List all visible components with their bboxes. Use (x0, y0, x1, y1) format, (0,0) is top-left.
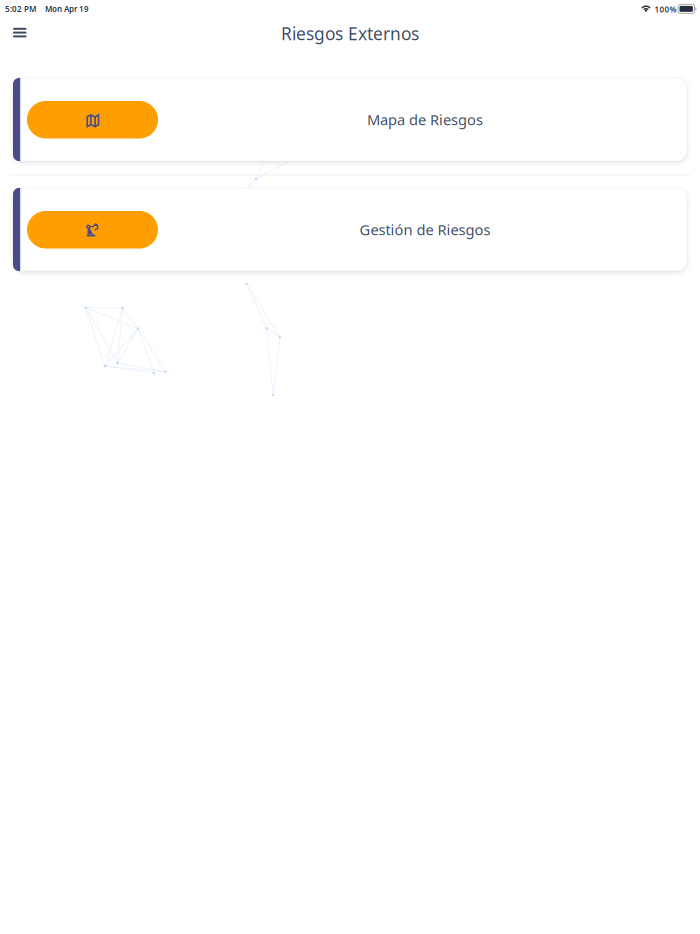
staticText: Mon Apr 19 (45, 3, 89, 14)
staticText: 5:02 PM (5, 3, 36, 14)
button[interactable]: Mapa de Riesgos (13, 78, 687, 161)
staticText: 100% (654, 4, 676, 15)
staticText: Mapa de Riesgos (367, 110, 483, 129)
button[interactable]: Menu (3, 14, 36, 44)
button[interactable]: Gestión de Riesgos (13, 188, 687, 271)
staticText: Riesgos Externos (281, 22, 419, 45)
staticText: Gestión de Riesgos (359, 220, 490, 239)
